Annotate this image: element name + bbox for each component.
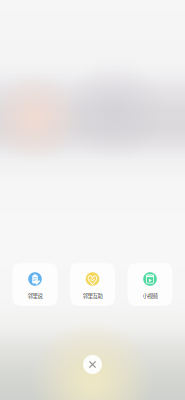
staticText: 小视频: [142, 292, 157, 299]
button[interactable]: Close: [83, 355, 102, 374]
staticText: 邻里说: [27, 292, 42, 299]
button[interactable]: 邻里互助: [70, 263, 115, 306]
button[interactable]: 小视频: [127, 263, 172, 306]
staticText: 邻里互助: [82, 292, 102, 299]
button[interactable]: 邻里说: [12, 263, 57, 306]
